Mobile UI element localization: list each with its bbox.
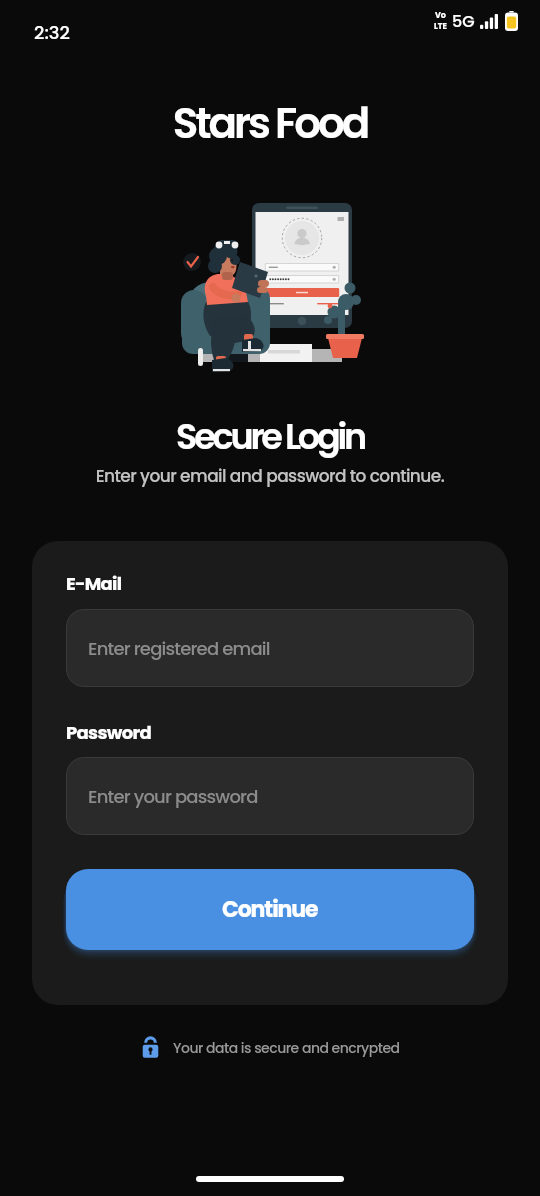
staticText: Continue [222, 894, 318, 925]
button[interactable]: Enter registered email [66, 609, 474, 687]
other: Security [140, 1036, 161, 1060]
staticText: Vo [435, 10, 446, 21]
staticText: E-Mail [66, 571, 122, 596]
staticText: Enter your email and password to continu… [0, 464, 540, 488]
staticText: Enter registered email [88, 636, 270, 661]
button[interactable]: Enter your password [66, 757, 474, 835]
staticText: Password [66, 720, 151, 745]
staticText: LTE [434, 21, 447, 32]
button[interactable]: Continue [66, 869, 474, 950]
staticText: Secure Login [0, 412, 540, 461]
staticText: Your data is secure and encrypted [173, 1038, 400, 1058]
staticText: 5G [452, 10, 475, 32]
staticText: Enter your password [88, 784, 258, 809]
staticText: Stars Food [0, 94, 540, 153]
staticText: 2:32 [34, 20, 70, 45]
